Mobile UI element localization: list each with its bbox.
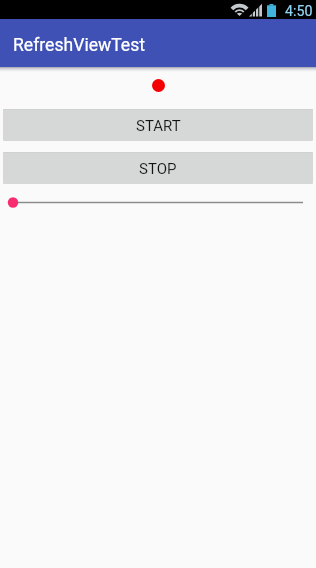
- staticText: STOP: [139, 160, 177, 178]
- button[interactable]: START: [3, 109, 313, 141]
- staticText: START: [136, 117, 181, 135]
- staticText: RefreshViewTest: [13, 35, 146, 56]
- other: Wi-Fi signal: [232, 4, 247, 16]
- staticText: 4:50: [285, 3, 313, 20]
- other: Mobile signal: [249, 3, 262, 17]
- button[interactable]: STOP: [3, 152, 313, 184]
- button[interactable]: Progress slider: [0, 190, 316, 214]
- other: Battery: [267, 4, 276, 17]
- other: Recording: [152, 79, 165, 92]
